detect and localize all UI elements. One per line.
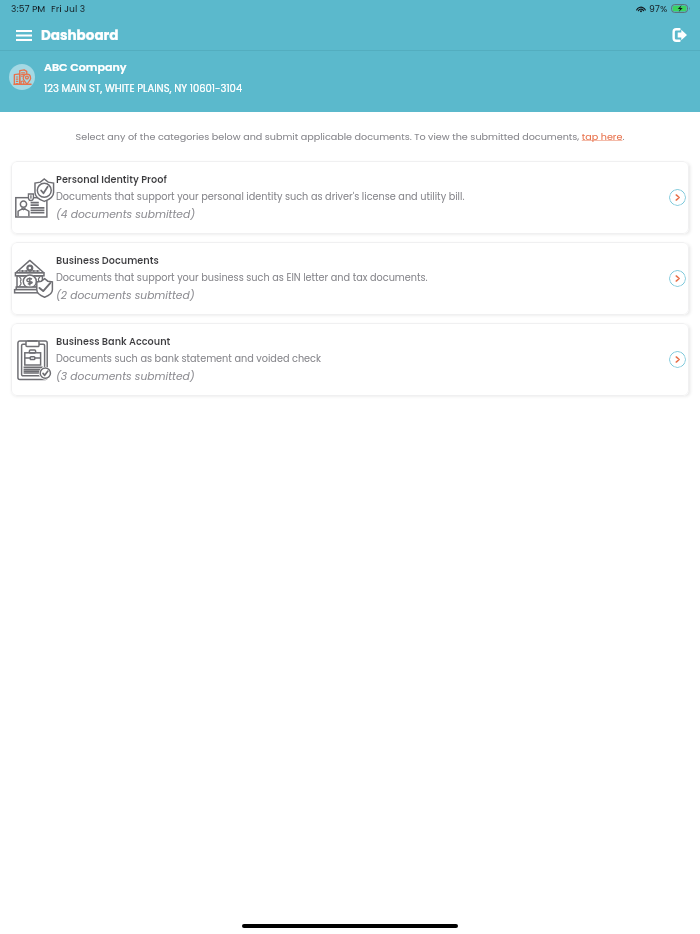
staticText: Documents that support your business suc… bbox=[56, 271, 428, 285]
button[interactable]: Open navigation menu bbox=[11, 22, 37, 48]
staticText: Dashboard bbox=[41, 26, 119, 45]
button[interactable]: Business Bank Account bbox=[11, 323, 689, 396]
button[interactable]: Log out bbox=[665, 21, 693, 49]
staticText: Business Documents bbox=[56, 254, 159, 268]
button[interactable]: Open Personal Identity Proof bbox=[669, 189, 686, 206]
button[interactable]: Personal Identity Proof bbox=[11, 161, 689, 234]
staticText: (4 documents submitted) bbox=[56, 207, 196, 222]
staticText: (2 documents submitted) bbox=[56, 288, 195, 303]
staticText: Documents such as bank statement and voi… bbox=[56, 352, 321, 366]
staticText: ABC Company bbox=[44, 59, 127, 75]
staticText: 3:57 PM bbox=[11, 2, 46, 15]
button[interactable]: Open Business Documents bbox=[669, 270, 686, 287]
button[interactable]: Open Business Bank Account bbox=[669, 351, 686, 368]
staticText: Select any of the categories below and s… bbox=[12, 130, 688, 143]
staticText: Personal Identity Proof bbox=[56, 173, 167, 187]
staticText: 97% bbox=[649, 2, 668, 15]
staticText: Fri Jul 3 bbox=[51, 2, 86, 15]
staticText: 123 MAIN ST, WHITE PLAINS, NY 10601-3104 bbox=[44, 81, 243, 95]
button[interactable]: Business Documents bbox=[11, 242, 689, 315]
staticText: Business Bank Account bbox=[56, 335, 171, 349]
staticText: (3 documents submitted) bbox=[56, 369, 195, 384]
staticText: Documents that support your personal ide… bbox=[56, 190, 465, 204]
